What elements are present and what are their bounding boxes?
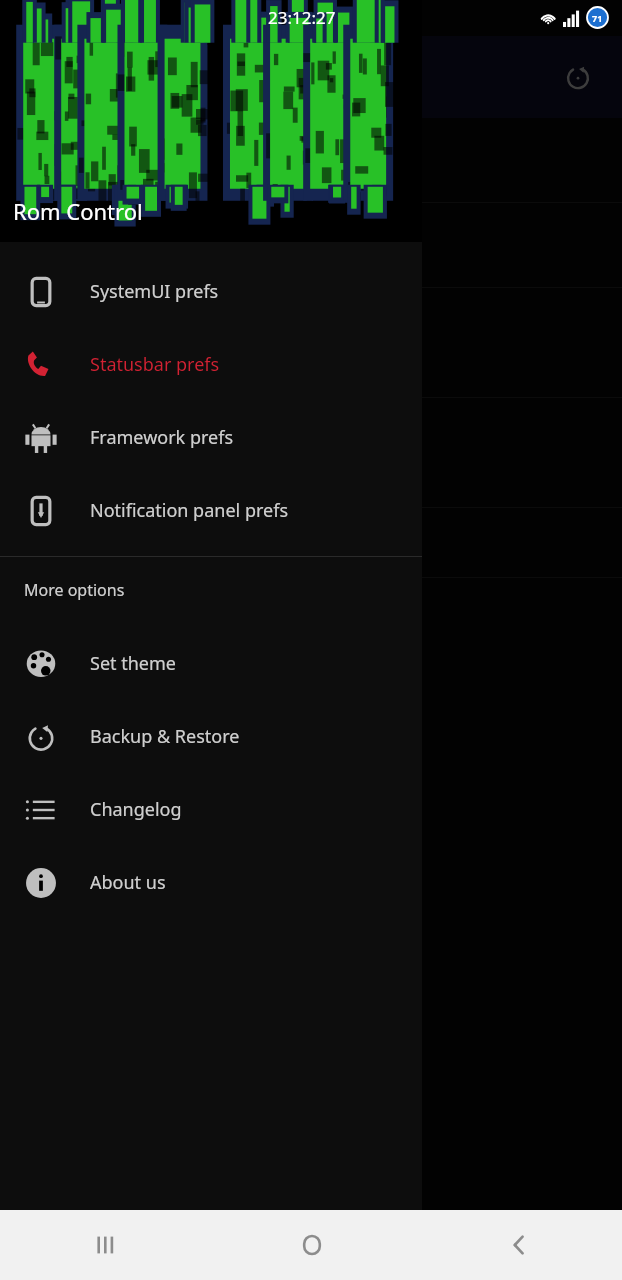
staticText: 71 xyxy=(592,12,603,24)
staticText: More options xyxy=(24,579,125,601)
button[interactable]: Changelog xyxy=(0,773,422,846)
button[interactable]: Backup & Restore xyxy=(0,700,422,773)
staticText: SystemUI prefs xyxy=(90,279,219,304)
button[interactable]: Home xyxy=(208,1210,415,1280)
staticText: Changelog xyxy=(90,797,182,822)
staticText: About us xyxy=(90,870,166,895)
button[interactable]: About us xyxy=(0,846,422,919)
button[interactable]: Back xyxy=(415,1210,622,1280)
button[interactable]: Notification panel prefs xyxy=(0,474,422,547)
button[interactable]: Statusbar prefs xyxy=(0,328,422,401)
button[interactable]: Recents xyxy=(0,1210,208,1280)
staticText: Notification panel prefs xyxy=(90,498,288,523)
button[interactable]: Reset xyxy=(556,55,600,99)
staticText: Statusbar prefs xyxy=(90,352,220,377)
button[interactable]: Set theme xyxy=(0,627,422,700)
staticText: Set theme xyxy=(90,651,176,676)
button[interactable]: Framework prefs xyxy=(0,401,422,474)
staticText: Backup & Restore xyxy=(90,724,240,749)
staticText: Rom Control xyxy=(13,196,143,226)
staticText: 23:12:27 xyxy=(268,6,336,29)
button[interactable]: SystemUI prefs xyxy=(0,255,422,328)
staticText: Framework prefs xyxy=(90,425,234,450)
